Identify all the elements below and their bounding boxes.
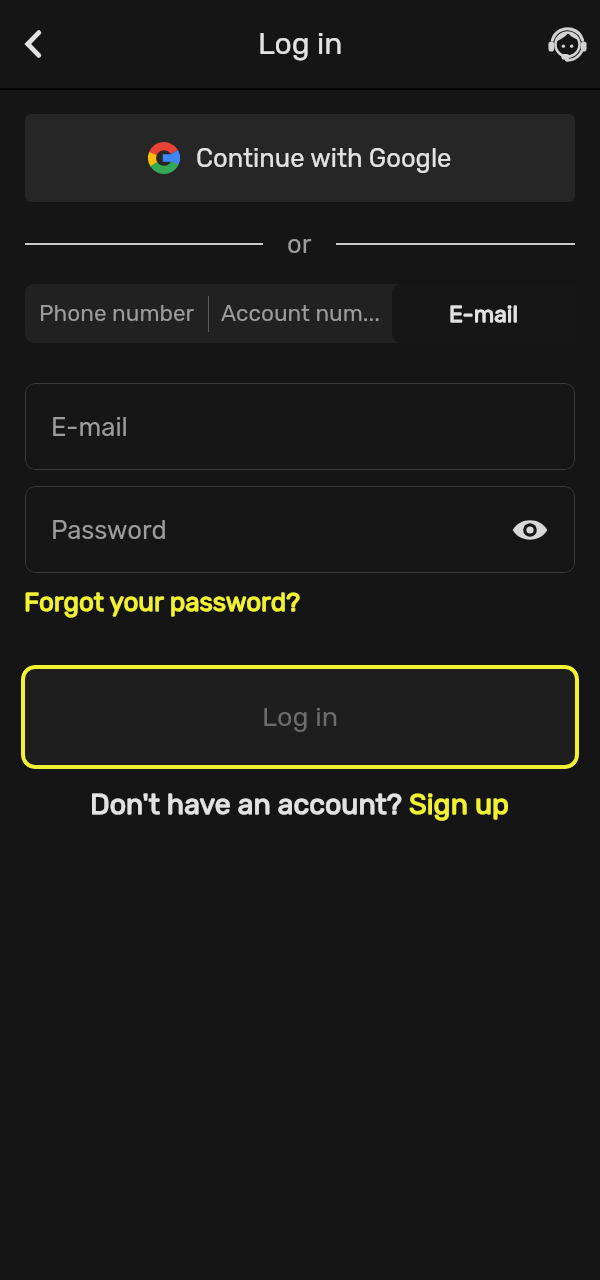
button[interactable]: Sign up bbox=[409, 787, 510, 821]
button[interactable]: Log in bbox=[21, 665, 579, 769]
staticText: Account num... bbox=[221, 300, 380, 327]
button[interactable]: Forgot your password? bbox=[24, 587, 300, 618]
staticText: Log in bbox=[262, 701, 339, 733]
staticText: or bbox=[287, 229, 312, 259]
button[interactable]: E-mail bbox=[25, 383, 575, 470]
staticText: Phone number bbox=[39, 300, 195, 327]
button[interactable]: E-mail bbox=[392, 284, 575, 343]
button[interactable]: Account num... bbox=[209, 284, 392, 343]
staticText: Log in bbox=[258, 26, 343, 62]
button[interactable]: Show password bbox=[506, 506, 554, 554]
staticText: E-mail bbox=[51, 412, 128, 442]
staticText: Continue with Google bbox=[196, 143, 452, 173]
button[interactable]: Phone number bbox=[25, 284, 208, 343]
button[interactable]: Continue with Google bbox=[25, 114, 575, 202]
staticText: E-mail bbox=[449, 300, 519, 327]
staticText: Don't have an account? bbox=[90, 787, 409, 821]
button[interactable]: Customer support bbox=[537, 14, 597, 74]
button[interactable]: Back bbox=[4, 14, 64, 74]
staticText: Password bbox=[51, 515, 167, 545]
button[interactable]: Password bbox=[25, 486, 575, 573]
